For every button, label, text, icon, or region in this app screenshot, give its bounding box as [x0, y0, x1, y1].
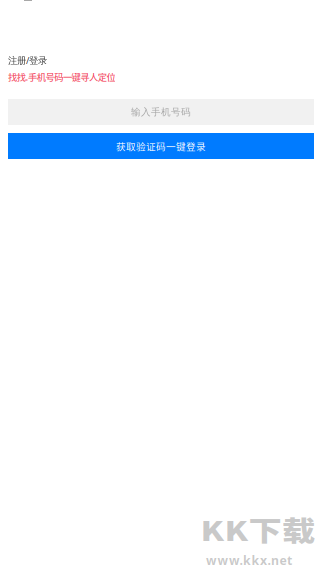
staticText: 获取验证码一键登录 [116, 139, 206, 153]
staticText: www.kkx.net [206, 552, 292, 569]
button[interactable]: 获取验证码一键登录 [8, 133, 314, 159]
staticText: 注册/登录 [8, 54, 47, 67]
staticText: 找找.手机号码一键寻人定位 [8, 70, 115, 83]
staticText: KK下载 [198, 504, 318, 554]
button[interactable]: 输入手机号码 [8, 99, 314, 125]
staticText: 输入手机号码 [131, 106, 191, 118]
